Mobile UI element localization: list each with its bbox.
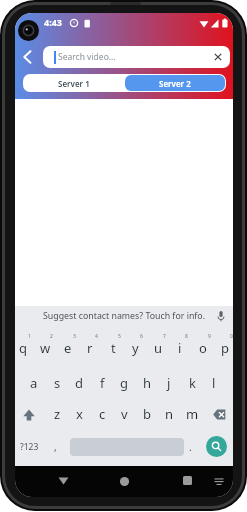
staticText: d [75,374,83,392]
button[interactable]: i [166,339,194,357]
staticText: a [30,374,38,392]
staticText: . [189,440,192,454]
button[interactable] [212,408,227,421]
button[interactable]: h [133,374,161,392]
button[interactable]: Search video... [43,46,230,68]
staticText: Server 2 [159,78,191,89]
staticText: f [100,374,105,392]
staticText: 5 [118,333,121,340]
button[interactable]: s [43,374,71,392]
button[interactable]: f [88,374,116,392]
button[interactable]: r [76,339,104,357]
button[interactable]: k [178,374,206,392]
staticText: l [212,374,216,392]
staticText: 1 [28,333,31,340]
staticText: u [154,339,163,357]
button[interactable]: a [20,374,48,392]
staticText: z [54,405,61,423]
button[interactable]: . [176,438,204,456]
button[interactable]: x [65,405,93,423]
staticText: , [54,440,57,454]
button[interactable]: n [155,405,183,423]
button[interactable]: u [144,339,172,357]
staticText: c [99,405,106,423]
button[interactable]: c [88,405,116,423]
button[interactable]: g [110,374,138,392]
button[interactable] [22,408,36,422]
staticText: q [19,339,27,357]
button[interactable] [20,48,34,64]
staticText: v [121,405,128,423]
staticText: r [87,339,93,357]
staticText: p [221,339,229,357]
button[interactable]: t [99,339,127,357]
button[interactable]: j [155,374,183,392]
button[interactable] [118,475,131,488]
staticText: 7 [163,333,166,340]
button[interactable]: v [110,405,138,423]
staticText: g [120,374,128,392]
button[interactable]: l [200,374,228,392]
staticText: t [111,339,116,357]
button[interactable]: e [54,339,82,357]
staticText: Suggest contact names? Touch for info. [43,310,206,322]
staticText: 2 [50,333,53,340]
button[interactable]: o [189,339,217,357]
button[interactable]: y [121,339,149,357]
staticText: h [143,374,152,392]
button[interactable]: Server 2 [125,75,225,91]
staticText: s [54,374,61,392]
staticText: m [186,405,199,423]
staticText: n [165,405,174,423]
staticText: 3 [73,333,76,340]
staticText: ?123 [20,441,39,453]
button[interactable] [206,436,227,457]
staticText: k [189,374,196,392]
button[interactable] [57,474,70,487]
staticText: 6 [140,333,143,340]
staticText: j [167,374,171,392]
button[interactable]: w [31,339,59,357]
staticText: o [199,339,207,357]
button[interactable]: m [178,405,206,423]
staticText: 4:43 [44,16,62,28]
button[interactable]: Server 1 [23,74,124,92]
staticText: 8 [185,333,188,340]
button[interactable]: , [41,438,69,456]
button[interactable]: d [65,374,93,392]
staticText: b [143,405,151,423]
button[interactable]: Suggest contact names? Touch for info. [15,306,233,326]
staticText: i [178,339,182,357]
staticText: Search video... [58,51,116,63]
staticText: 4 [95,333,98,340]
button[interactable]: q [15,339,37,357]
button[interactable]: ?123 [15,438,43,456]
staticText: w [40,339,51,357]
button[interactable]: z [43,405,71,423]
button[interactable] [215,310,227,324]
staticText: x [76,405,83,423]
staticText: Server 1 [58,78,90,89]
staticText: e [64,339,72,357]
button[interactable] [214,53,222,61]
staticText: 9 [208,333,211,340]
staticText: 0 [230,333,233,340]
button[interactable] [183,476,192,485]
button[interactable]: b [133,405,161,423]
button[interactable]: p [211,339,233,357]
staticText: y [132,339,139,357]
